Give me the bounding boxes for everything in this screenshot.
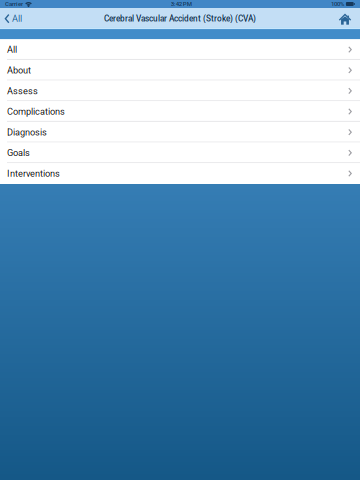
staticText: Carrier [5, 0, 23, 7]
button[interactable]: Goals [0, 143, 360, 163]
staticText: 3:42 PM [171, 0, 192, 7]
button[interactable]: Interventions [0, 163, 360, 184]
staticText: All [7, 44, 17, 55]
button[interactable]: Assess [0, 81, 360, 101]
staticText: Diagnosis [7, 127, 47, 138]
button[interactable]: Home [332, 8, 360, 29]
staticText: 100% [331, 0, 344, 7]
button[interactable]: About [0, 60, 360, 80]
staticText: Assess [7, 86, 38, 96]
button[interactable]: Complications [0, 101, 360, 122]
staticText: Interventions [7, 168, 60, 179]
staticText: Goals [7, 148, 30, 158]
staticText: All [12, 13, 22, 24]
staticText: Cerebral Vascular Accident (Stroke) (CVA… [104, 14, 256, 23]
button[interactable]: All [0, 8, 29, 29]
staticText: About [7, 65, 31, 76]
staticText: Complications [7, 106, 65, 117]
button[interactable]: Diagnosis [0, 122, 360, 142]
button[interactable]: All [0, 39, 360, 60]
